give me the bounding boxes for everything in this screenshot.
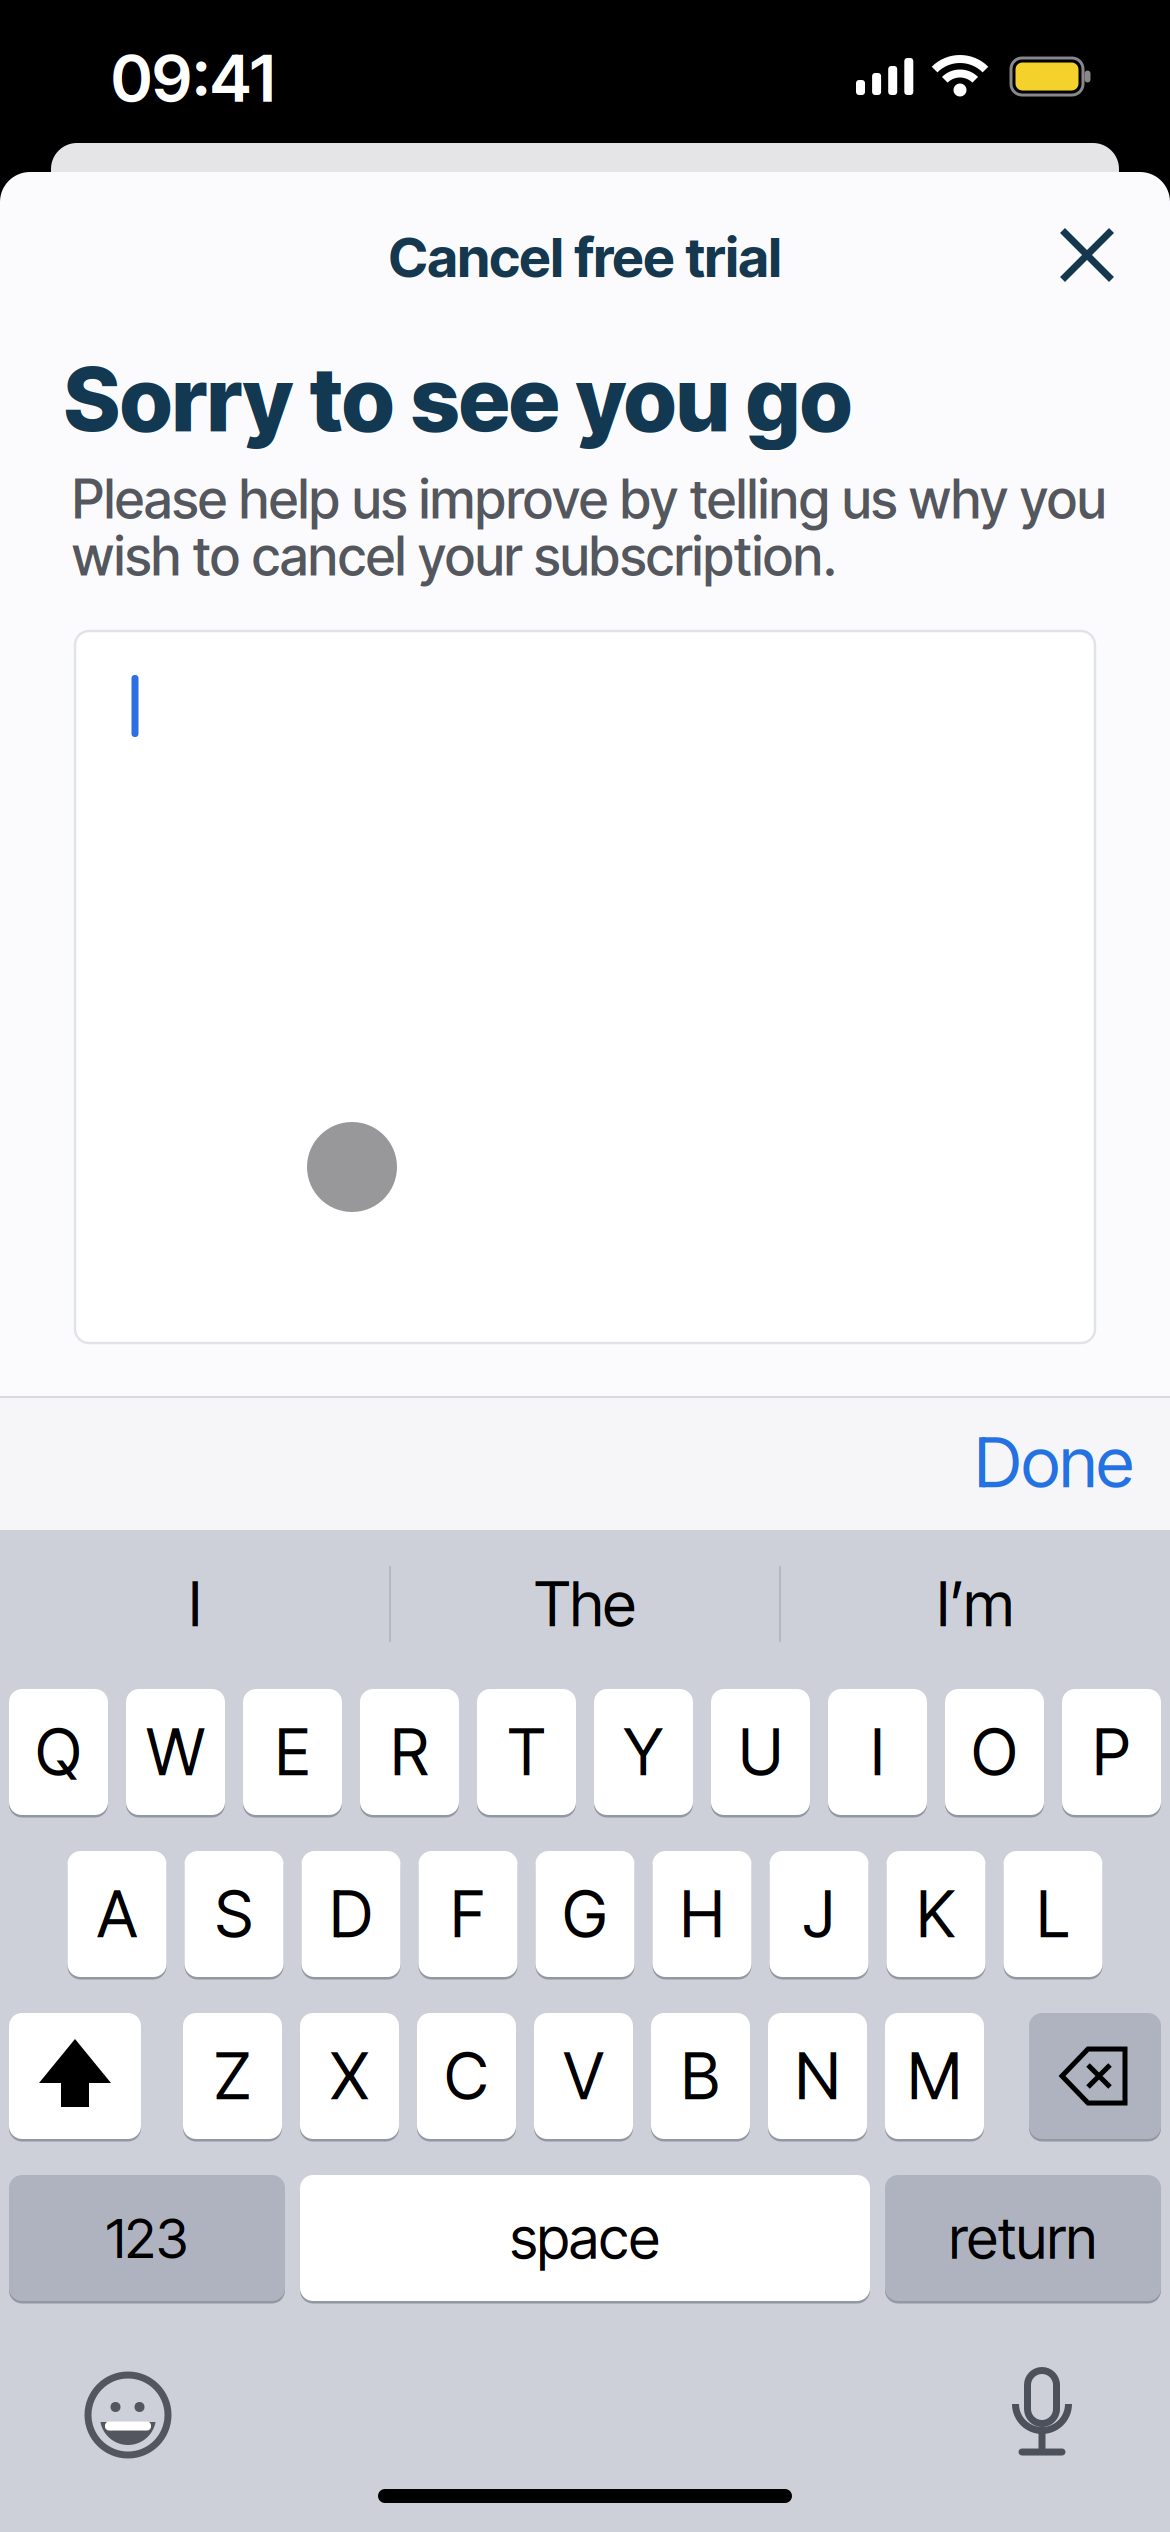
staticText: wish to cancel your subscription. — [72, 524, 837, 588]
staticText: M — [907, 2037, 961, 2115]
button[interactable]: N — [768, 2011, 867, 2140]
button[interactable]: P — [1062, 1687, 1161, 1816]
button[interactable]: Shift — [9, 2011, 141, 2140]
staticText: K — [916, 1875, 955, 1953]
button[interactable]: Q — [9, 1687, 108, 1816]
staticText: space — [510, 2203, 660, 2273]
staticText: G — [562, 1875, 607, 1953]
button[interactable]: O — [945, 1687, 1044, 1816]
staticText: I’m — [936, 1567, 1013, 1641]
staticText: L — [1036, 1875, 1069, 1953]
button[interactable]: E — [243, 1687, 342, 1816]
staticText: A — [97, 1875, 137, 1953]
button[interactable]: C — [417, 2011, 516, 2140]
button[interactable]: Y — [594, 1687, 693, 1816]
button[interactable]: Emoji — [80, 2367, 176, 2463]
button[interactable]: Z — [183, 2011, 282, 2140]
button[interactable]: M — [885, 2011, 984, 2140]
button[interactable]: 123 — [9, 2173, 285, 2302]
staticText: V — [563, 2037, 603, 2115]
button[interactable]: K — [886, 1849, 985, 1978]
button[interactable]: A — [67, 1849, 166, 1978]
staticText: The — [534, 1567, 636, 1641]
staticText: H — [680, 1875, 724, 1953]
staticText: Q — [35, 1713, 81, 1791]
button[interactable]: R — [360, 1687, 459, 1816]
button[interactable]: I’m — [785, 1534, 1165, 1674]
staticText: I — [870, 1713, 884, 1791]
button[interactable]: F — [418, 1849, 517, 1978]
button[interactable]: V — [534, 2011, 633, 2140]
staticText: T — [507, 1713, 545, 1791]
staticText: D — [329, 1875, 372, 1953]
staticText: R — [390, 1713, 428, 1791]
button[interactable]: L — [1003, 1849, 1102, 1978]
staticText: I — [188, 1567, 201, 1641]
button[interactable]: Done — [939, 1397, 1169, 1527]
staticText: B — [681, 2037, 720, 2115]
staticText: O — [971, 1713, 1017, 1791]
staticText: Please help us improve by telling us why… — [72, 467, 1106, 531]
staticText: Z — [214, 2037, 251, 2115]
staticText: Sorry to see you go — [64, 346, 852, 452]
staticText: N — [795, 2037, 840, 2115]
button[interactable]: space — [300, 2173, 870, 2302]
button[interactable]: G — [535, 1849, 634, 1978]
staticText: 123 — [106, 2205, 188, 2271]
staticText: Done — [974, 1420, 1133, 1504]
button[interactable]: Close — [1056, 224, 1117, 285]
button[interactable]: Dictate — [994, 2357, 1090, 2467]
staticText: Y — [623, 1713, 663, 1791]
button[interactable]: D — [301, 1849, 400, 1978]
staticText: J — [803, 1875, 835, 1953]
button[interactable]: I — [5, 1534, 385, 1674]
staticText: W — [146, 1713, 204, 1791]
staticText: F — [450, 1875, 485, 1953]
button[interactable]: J — [769, 1849, 868, 1978]
staticText: P — [1092, 1713, 1130, 1791]
button[interactable]: T — [477, 1687, 576, 1816]
button[interactable]: S — [184, 1849, 283, 1978]
button[interactable]: The — [395, 1534, 775, 1674]
staticText: X — [330, 2037, 368, 2115]
staticText: 09:41 — [111, 38, 275, 117]
button[interactable]: B — [651, 2011, 750, 2140]
button[interactable]: U — [711, 1687, 810, 1816]
button[interactable]: X — [300, 2011, 399, 2140]
button[interactable]: return — [885, 2173, 1161, 2302]
staticText: Cancel free trial — [388, 224, 781, 290]
staticText: U — [738, 1713, 782, 1791]
staticText: S — [215, 1875, 253, 1953]
staticText: E — [275, 1713, 310, 1791]
button[interactable]: W — [126, 1687, 225, 1816]
staticText: return — [949, 2203, 1097, 2273]
button[interactable]: H — [652, 1849, 751, 1978]
button[interactable]: Delete — [1029, 2011, 1161, 2140]
button[interactable]: I — [828, 1687, 927, 1816]
staticText: C — [444, 2037, 488, 2115]
